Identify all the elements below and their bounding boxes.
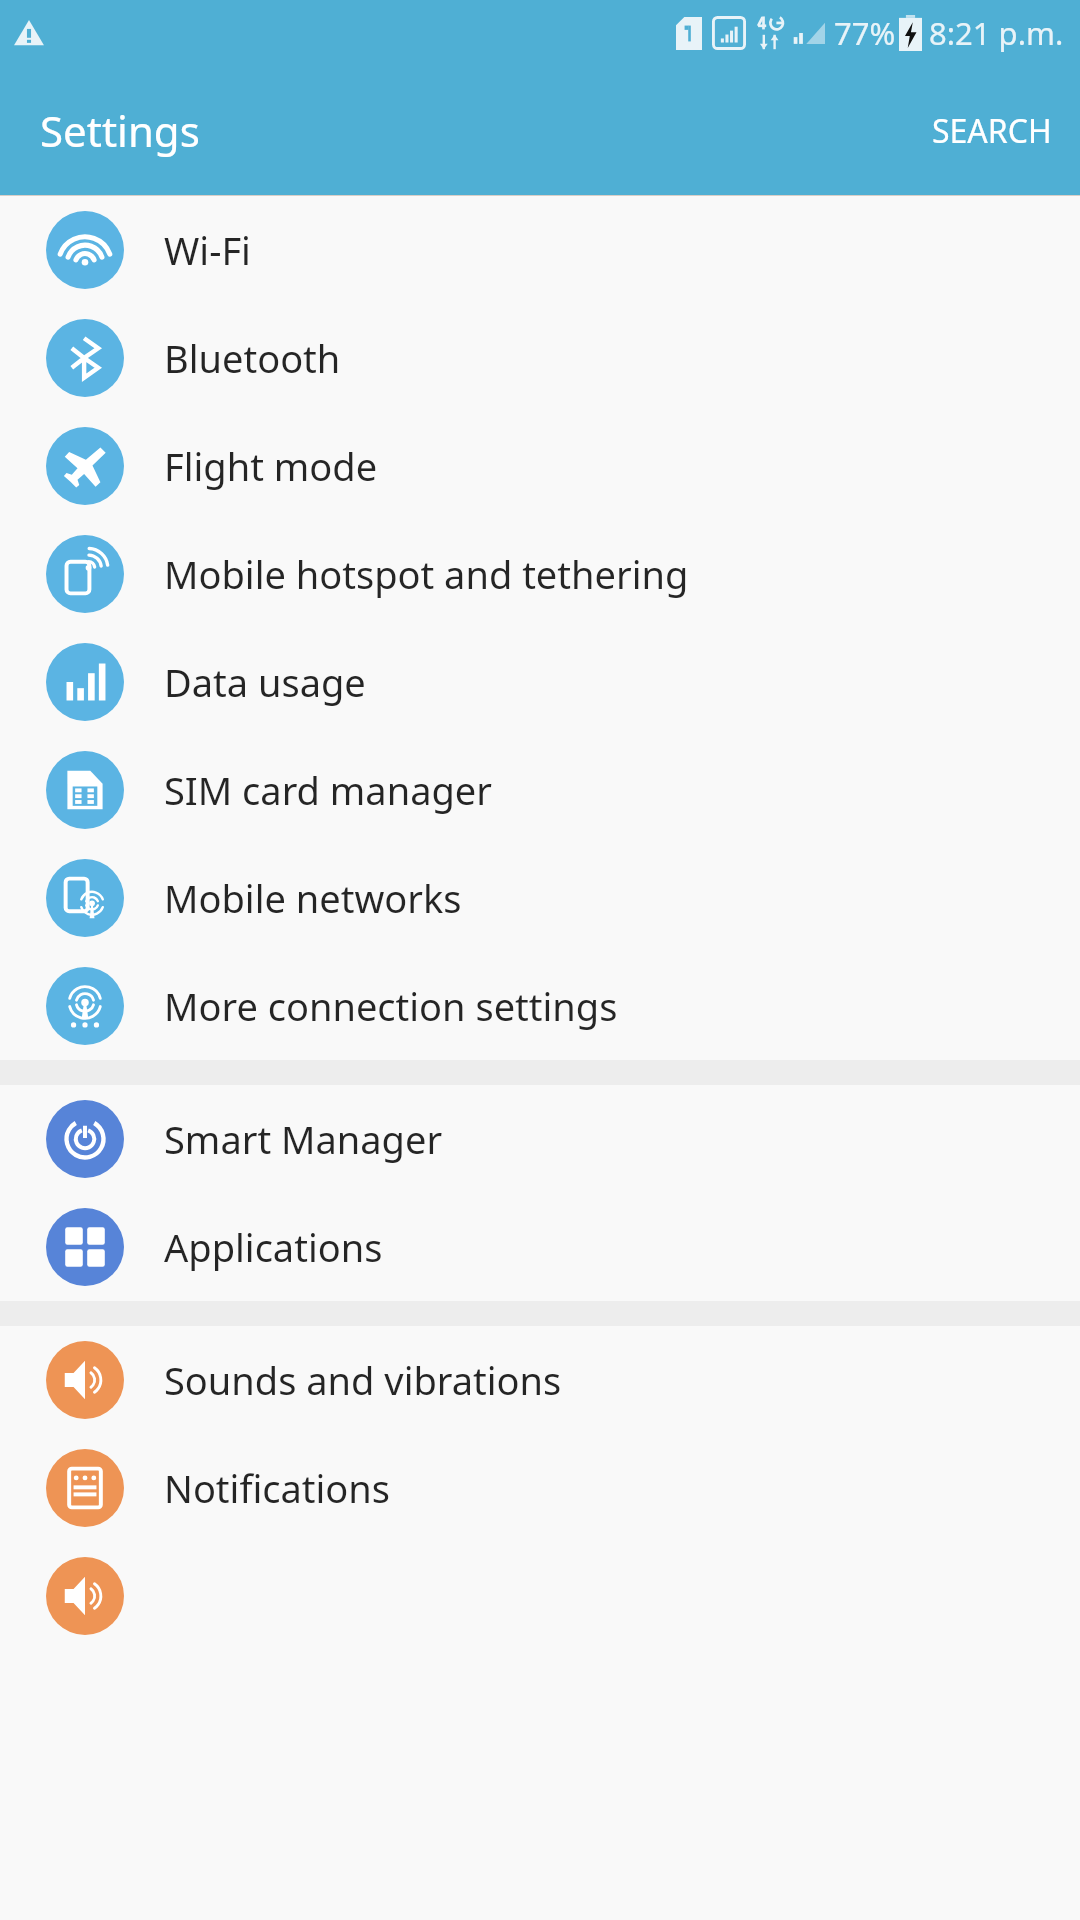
staticText: Settings [40, 102, 200, 159]
button[interactable]: Mobile hotspot and tethering [0, 520, 1080, 628]
button[interactable]: Wi-Fi [0, 196, 1080, 304]
staticText: More connection settings [164, 980, 618, 1032]
staticText: Wi-Fi [164, 224, 251, 276]
button[interactable] [0, 1542, 1080, 1650]
button[interactable]: SEARCH [904, 89, 1080, 173]
staticText: Mobile hotspot and tethering [164, 548, 689, 600]
button[interactable]: Smart Manager [0, 1085, 1080, 1193]
button[interactable]: SIM card manager [0, 736, 1080, 844]
button[interactable]: Flight mode [0, 412, 1080, 520]
button[interactable]: More connection settings [0, 952, 1080, 1060]
button[interactable]: Notifications [0, 1434, 1080, 1542]
staticText: Smart Manager [164, 1113, 443, 1165]
button[interactable]: Sounds and vibrations [0, 1326, 1080, 1434]
staticText: Bluetooth [164, 332, 341, 384]
staticText: Sounds and vibrations [164, 1354, 562, 1406]
staticText: Flight mode [164, 440, 378, 492]
staticText: Mobile networks [164, 872, 462, 924]
button[interactable]: Mobile networks [0, 844, 1080, 952]
staticText: Data usage [164, 656, 366, 708]
staticText: 77% [834, 12, 896, 54]
button[interactable]: Applications [0, 1193, 1080, 1301]
staticText: Applications [164, 1221, 383, 1273]
staticText: SIM card manager [164, 764, 492, 816]
button[interactable]: Data usage [0, 628, 1080, 736]
staticText: SEARCH [932, 109, 1052, 153]
staticText: Notifications [164, 1462, 391, 1514]
button[interactable]: Bluetooth [0, 304, 1080, 412]
staticText: 8:21 p.m. [929, 12, 1064, 54]
